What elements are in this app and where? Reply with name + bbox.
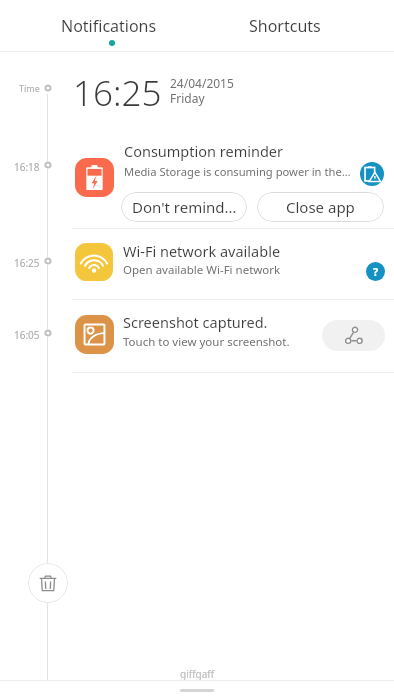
staticText: 16:05	[14, 328, 40, 342]
button[interactable]: Don't remind…	[121, 192, 247, 222]
button[interactable]: Battery details	[360, 162, 384, 186]
staticText: ?	[373, 264, 379, 279]
staticText: Don't remind…	[132, 197, 237, 217]
staticText: Notifications	[61, 15, 157, 37]
button[interactable]: Shortcuts	[197, 0, 394, 51]
staticText: giffgaff	[180, 667, 215, 681]
staticText: Touch to view your screenshot.	[123, 334, 290, 350]
button[interactable]: Delete all	[28, 563, 68, 603]
staticText: 24/04/2015	[170, 75, 234, 91]
button[interactable]: Help	[366, 262, 385, 281]
staticText: Open available Wi-Fi network	[123, 262, 281, 278]
staticText: Close app	[286, 197, 355, 217]
staticText: 16:25	[14, 256, 40, 270]
staticText: Media Storage is consuming power in the…	[124, 164, 351, 179]
staticText: Shortcuts	[249, 15, 321, 37]
button[interactable]: Share	[322, 320, 385, 351]
staticText: Friday	[170, 90, 205, 106]
button[interactable]: Close app	[257, 192, 384, 222]
staticText: Time	[19, 82, 40, 94]
staticText: Wi-Fi network available	[123, 241, 281, 261]
staticText: 16:18	[14, 160, 40, 174]
button[interactable]: Notifications	[0, 0, 197, 51]
staticText: 16:25	[73, 69, 162, 117]
staticText: Screenshot captured.	[123, 312, 268, 332]
staticText: Consumption reminder	[124, 141, 283, 161]
